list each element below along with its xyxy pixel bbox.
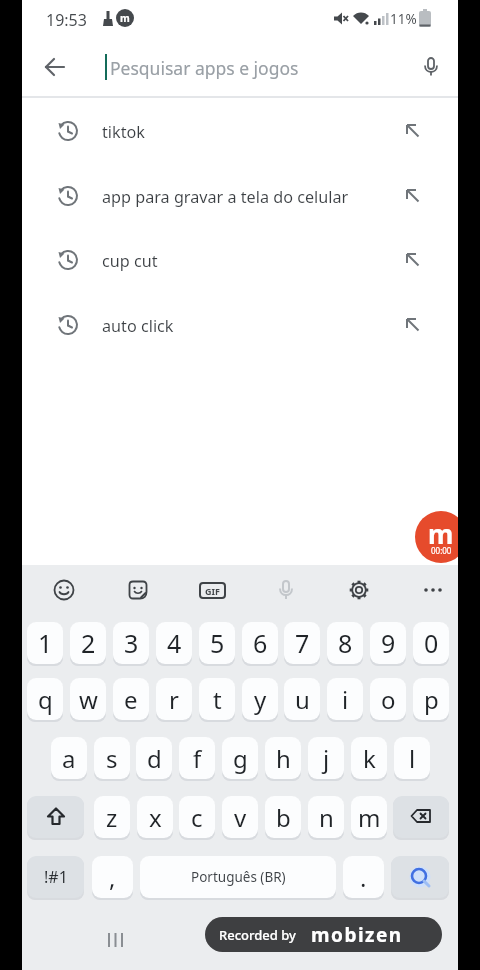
button[interactable]: w xyxy=(70,678,106,720)
button[interactable]: 7 xyxy=(284,622,320,664)
staticText: f xyxy=(193,742,202,775)
button[interactable] xyxy=(412,48,450,86)
button[interactable]: 6 xyxy=(242,622,278,664)
button[interactable]: o xyxy=(370,678,406,720)
button[interactable]: a xyxy=(51,737,87,779)
button[interactable]: e xyxy=(113,678,149,720)
button[interactable]: GIF xyxy=(199,582,226,599)
button[interactable]: s xyxy=(94,737,130,779)
staticText: 4 xyxy=(167,626,182,660)
button[interactable]: tiktok xyxy=(22,99,458,164)
button[interactable]: t xyxy=(199,678,235,720)
button[interactable] xyxy=(36,48,74,86)
staticText: , xyxy=(109,861,116,894)
button[interactable]: m xyxy=(351,796,387,838)
staticText: 2 xyxy=(81,626,96,660)
staticText: e xyxy=(124,683,138,716)
staticText: c xyxy=(191,801,203,834)
staticText: a xyxy=(62,742,76,775)
button[interactable]: 5 xyxy=(199,622,235,664)
staticText: 0 xyxy=(424,626,439,660)
staticText: mobizen xyxy=(311,922,403,948)
button[interactable]: u xyxy=(284,678,320,720)
button[interactable]: f xyxy=(179,737,215,779)
button[interactable]: l xyxy=(394,737,430,779)
button[interactable]: app para gravar a tela do celular xyxy=(22,164,458,229)
button[interactable]: r xyxy=(156,678,192,720)
staticText: l xyxy=(409,742,416,775)
button[interactable]: g xyxy=(222,737,258,779)
staticText: 9 xyxy=(381,626,396,660)
staticText: m xyxy=(358,801,381,834)
staticText: w xyxy=(79,683,98,716)
button[interactable]: , xyxy=(92,856,133,898)
staticText: v xyxy=(234,801,247,834)
staticText: j xyxy=(323,742,330,775)
staticText: GIF xyxy=(205,585,220,597)
button[interactable] xyxy=(417,574,449,606)
button[interactable]: p xyxy=(413,678,449,720)
button[interactable]: i xyxy=(327,678,363,720)
staticText: i xyxy=(342,683,349,716)
button[interactable]: c xyxy=(179,796,215,838)
staticText: 6 xyxy=(253,626,268,660)
button[interactable]: auto click xyxy=(22,293,458,358)
button[interactable]: cup cut xyxy=(22,228,458,293)
button[interactable]: . xyxy=(343,856,384,898)
staticText: r xyxy=(169,683,179,716)
staticText: s xyxy=(106,742,118,775)
staticText: t xyxy=(213,683,222,716)
staticText: !#1 xyxy=(44,866,68,888)
staticText: cup cut xyxy=(102,250,158,272)
button[interactable]: 9 xyxy=(370,622,406,664)
staticText: k xyxy=(363,742,376,775)
button[interactable]: k xyxy=(351,737,387,779)
staticText: 19:53 xyxy=(46,9,87,31)
button[interactable]: m xyxy=(415,511,467,563)
button[interactable]: b xyxy=(265,796,301,838)
button[interactable]: h xyxy=(265,737,301,779)
button[interactable]: v xyxy=(222,796,258,838)
button[interactable] xyxy=(27,796,84,838)
staticText: 5 xyxy=(210,626,225,660)
button[interactable] xyxy=(122,574,154,606)
staticText: 00:00 xyxy=(431,545,452,556)
staticText: u xyxy=(295,683,310,716)
staticText: d xyxy=(147,742,162,775)
staticText: 1 xyxy=(38,626,53,660)
staticText: p xyxy=(424,683,439,716)
button[interactable] xyxy=(393,796,449,838)
staticText: g xyxy=(233,742,248,775)
staticText: z xyxy=(106,801,118,834)
button[interactable]: j xyxy=(308,737,344,779)
staticText: o xyxy=(381,683,396,716)
staticText: tiktok xyxy=(102,121,145,143)
staticText: y xyxy=(254,683,267,716)
button[interactable]: 8 xyxy=(327,622,363,664)
button[interactable]: 1 xyxy=(27,622,63,664)
staticText: 8 xyxy=(338,626,353,660)
button[interactable] xyxy=(391,856,449,898)
staticText: Pesquisar apps e jogos xyxy=(110,56,299,80)
staticText: Português (BR) xyxy=(191,868,286,886)
button[interactable]: q xyxy=(27,678,63,720)
button[interactable]: !#1 xyxy=(27,856,84,898)
staticText: . xyxy=(360,861,367,894)
button[interactable]: Português (BR) xyxy=(140,856,336,898)
button[interactable]: z xyxy=(94,796,130,838)
button[interactable]: n xyxy=(308,796,344,838)
button[interactable] xyxy=(48,574,80,606)
button[interactable]: 0 xyxy=(413,622,449,664)
staticText: m xyxy=(428,516,454,551)
button[interactable]: x xyxy=(137,796,173,838)
button[interactable] xyxy=(343,574,375,606)
button[interactable]: 3 xyxy=(113,622,149,664)
button[interactable]: 4 xyxy=(156,622,192,664)
staticText: auto click xyxy=(102,315,174,337)
staticText: m xyxy=(120,11,130,25)
button[interactable]: 2 xyxy=(70,622,106,664)
staticText: b xyxy=(276,801,291,834)
button[interactable]: y xyxy=(242,678,278,720)
staticText: n xyxy=(319,801,334,834)
button[interactable]: d xyxy=(136,737,172,779)
